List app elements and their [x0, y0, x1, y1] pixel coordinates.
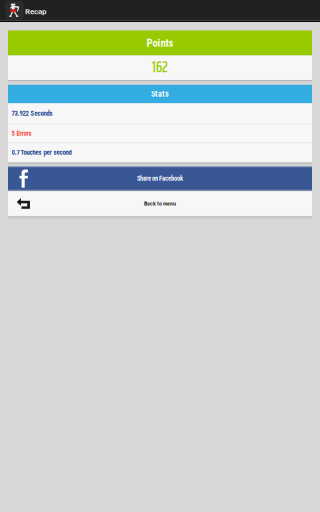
button[interactable]: Recap — [0, 0, 320, 21]
button[interactable]: Back to menu — [8, 191, 312, 215]
staticText: Back to menu — [144, 200, 176, 207]
button[interactable]: Share on Facebook — [8, 168, 312, 189]
staticText: 0.7 Touches per second — [12, 148, 72, 156]
staticText: Recap — [25, 7, 47, 16]
staticText: 5 Errors — [12, 129, 32, 137]
staticText: 162 — [152, 55, 168, 79]
staticText: Stats — [151, 89, 169, 99]
staticText: 73.922 Seconds — [12, 109, 53, 117]
staticText: Points — [146, 37, 173, 49]
staticText: Share on Facebook — [137, 175, 183, 182]
